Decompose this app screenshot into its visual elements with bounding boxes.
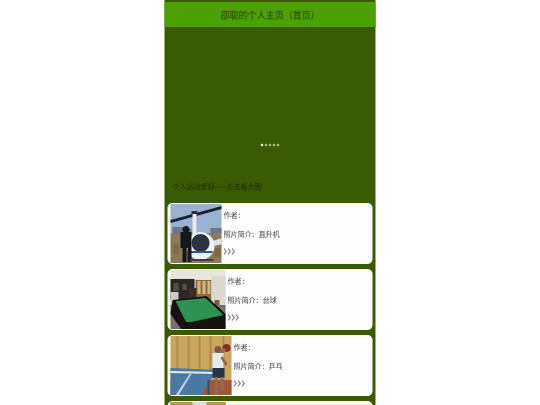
staticText: 作者： (223, 209, 244, 220)
staticText: 个人运动爱好——点击看大图 (172, 181, 261, 191)
staticText: 作者： (233, 341, 254, 352)
button[interactable]: 作者： (167, 335, 372, 396)
staticText: 作者： (227, 275, 248, 286)
staticText: 照片简介：乒乓 (233, 360, 282, 371)
staticText: 照片简介：直升机 (223, 228, 279, 239)
staticText: 照片简介：台球 (227, 294, 276, 305)
button[interactable]: 邵聪的个人主页（首页） (164, 2, 375, 27)
button[interactable]: 作者： (167, 269, 372, 330)
button[interactable]: 作者： (167, 203, 372, 264)
button[interactable]: 个人运动爱好——点击看大图 (164, 177, 375, 195)
staticText: 邵聪的个人主页（首页） (220, 8, 319, 21)
button[interactable]: 作者： (167, 401, 372, 405)
